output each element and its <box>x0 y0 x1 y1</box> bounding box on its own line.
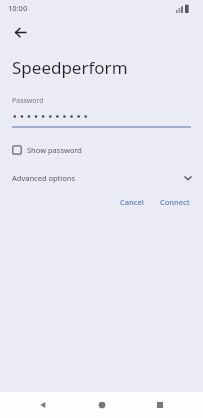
button[interactable]: Show password <box>10 142 84 158</box>
button[interactable]: Back <box>6 18 34 46</box>
button[interactable]: Connect <box>155 192 195 212</box>
staticText: 10:00 <box>8 3 28 13</box>
staticText: Password <box>12 96 44 106</box>
button[interactable]: Advanced options <box>0 168 203 188</box>
button[interactable]: Home <box>87 392 117 418</box>
staticText: Connect <box>160 197 190 207</box>
staticText: Show password <box>27 145 82 155</box>
button[interactable]: Recent apps <box>145 392 175 418</box>
staticText: Advanced options <box>12 173 76 183</box>
button[interactable]: Back <box>28 392 58 418</box>
staticText: Speedperform <box>12 56 128 79</box>
staticText: Cancel <box>120 197 144 207</box>
button[interactable]: Cancel <box>115 192 149 212</box>
